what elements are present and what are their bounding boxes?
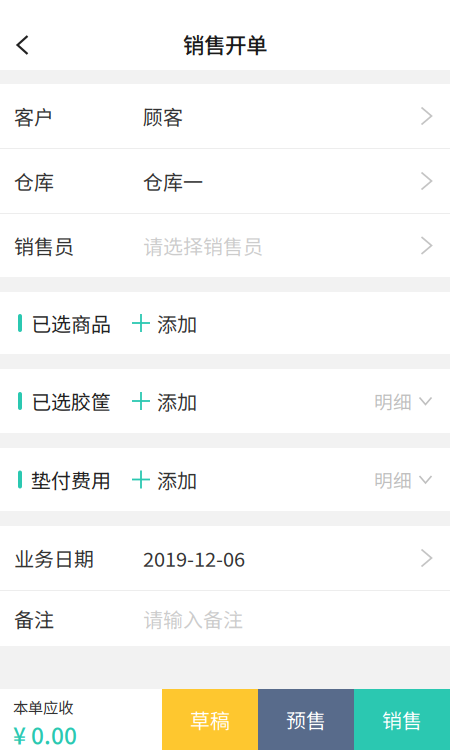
staticText: 明细 [374,387,412,414]
staticText: 客户 [14,101,54,130]
button[interactable]: 预售 [258,689,354,750]
button[interactable]: 添加 [111,298,197,347]
button[interactable]: 仓库 [0,149,450,213]
staticText: 本单应收 [13,696,73,718]
staticText: 预售 [286,705,326,734]
staticText: 添加 [157,386,197,415]
staticText: 垫付费用 [31,465,111,494]
staticText: 请输入备注 [143,604,243,633]
button[interactable]: 明细 [374,377,432,424]
button[interactable]: 添加 [111,376,197,425]
staticText: 添加 [157,465,197,494]
staticText: 业务日期 [14,543,94,572]
staticText: 仓库一 [143,166,203,195]
staticText: 添加 [157,308,197,337]
staticText: 备注 [14,604,54,633]
button[interactable]: Back [0,21,28,68]
staticText: 销售 [382,705,422,734]
staticText: 已选胶筐 [31,386,111,415]
staticText: 草稿 [190,705,230,734]
staticText: ¥ 0.00 [13,718,77,750]
button[interactable]: 销售员 [0,214,450,277]
button[interactable]: 业务日期 [0,526,450,590]
staticText: 销售开单 [183,29,267,59]
staticText: 销售员 [14,231,74,260]
staticText: 请选择销售员 [143,231,263,260]
staticText: 2019-12-06 [143,543,245,572]
button[interactable]: 添加 [111,455,197,504]
staticText: 明细 [374,466,412,493]
button[interactable]: 备注 [0,591,450,646]
button[interactable]: 明细 [374,456,432,503]
staticText: 已选商品 [31,308,111,337]
staticText: 顾客 [143,101,183,130]
button[interactable]: 客户 [0,84,450,148]
staticText: 仓库 [14,166,54,195]
button[interactable]: 销售 [354,689,450,750]
button[interactable]: 草稿 [162,689,258,750]
